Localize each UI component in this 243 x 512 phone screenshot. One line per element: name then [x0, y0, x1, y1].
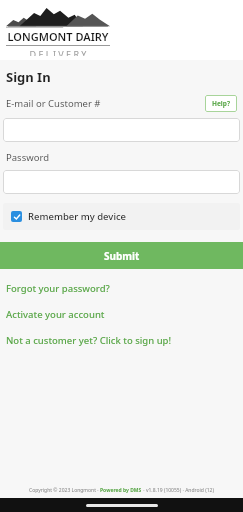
staticText: Copyright © 2023 Longmont ·: [29, 487, 100, 494]
staticText: Activate your account: [6, 308, 105, 321]
staticText: · v1.8.19 (10055) · Android (12): [142, 487, 214, 494]
staticText: Forgot your password?: [6, 282, 110, 295]
staticText: Help?: [212, 99, 230, 108]
staticText: Not a customer yet? Click to sign up!: [6, 334, 172, 347]
staticText: Remember my device: [28, 210, 127, 223]
button[interactable]: Activate your account: [0, 308, 243, 321]
button[interactable]: [3, 118, 240, 142]
button[interactable]: Not a customer yet? Click to sign up!: [0, 334, 243, 347]
button[interactable]: Help?: [205, 95, 237, 112]
button[interactable]: Submit: [0, 242, 243, 269]
staticText: Submit: [104, 249, 140, 263]
button[interactable]: [3, 170, 240, 194]
button[interactable]: Forgot your password?: [0, 282, 243, 295]
staticText: Password: [6, 151, 49, 164]
staticText: LONGMONT DAIRY: [6, 29, 110, 44]
button[interactable]: Remember my device: [3, 203, 240, 230]
staticText: D E L I V E R Y: [6, 48, 110, 56]
staticText: Sign In: [6, 68, 51, 86]
staticText: E-mail or Customer #: [6, 97, 101, 110]
button[interactable]: Powered by DMS: [100, 487, 142, 494]
